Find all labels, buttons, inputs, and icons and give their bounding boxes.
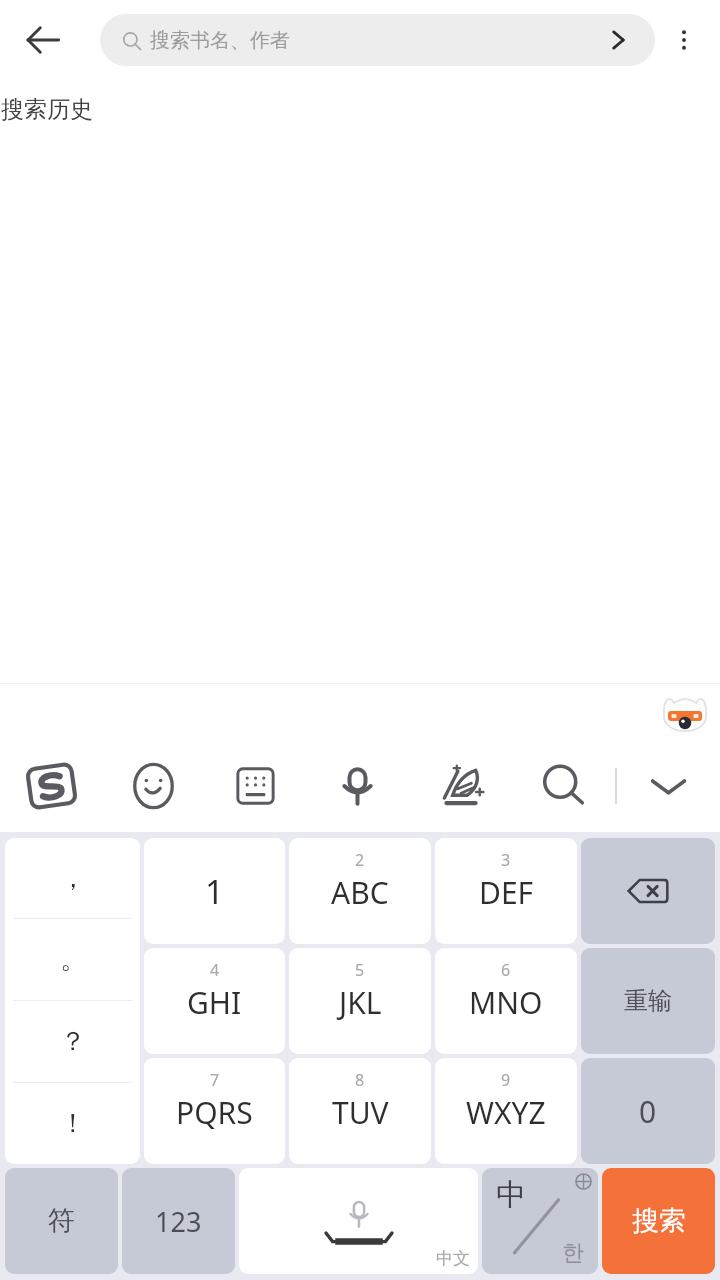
staticText: 中文 (436, 1248, 470, 1269)
staticText: ！ (60, 1107, 86, 1140)
staticText: JKL (339, 982, 382, 1023)
staticText: 中 (496, 1176, 526, 1214)
staticText: 7 (210, 1069, 220, 1091)
button[interactable]: 9 (435, 1058, 577, 1164)
staticText: 5 (355, 959, 365, 981)
button[interactable]: Sogou logo (0, 740, 102, 832)
button[interactable]: 2 (289, 838, 431, 944)
button[interactable]: Hide keyboard (617, 740, 720, 832)
staticText: 6 (501, 959, 511, 981)
button[interactable]: 3 (435, 838, 577, 944)
staticText: 3 (501, 849, 511, 871)
button[interactable]: 搜索 (602, 1168, 715, 1274)
staticText: 。 (60, 943, 86, 976)
staticText: TUV (332, 1092, 389, 1133)
button[interactable]: ！ (5, 1083, 140, 1164)
staticText: DEF (479, 872, 534, 913)
button[interactable]: Sogou assistant (656, 690, 714, 748)
button[interactable]: Search (595, 17, 641, 63)
staticText: 搜索书名、作者 (150, 28, 290, 53)
button[interactable]: 0 (581, 1058, 715, 1164)
staticText: 符 (48, 1204, 75, 1238)
button[interactable]: 5 (289, 948, 431, 1054)
staticText: ABC (331, 872, 389, 913)
staticText: 123 (155, 1203, 202, 1240)
button[interactable]: 6 (435, 948, 577, 1054)
button[interactable]: 4 (144, 948, 285, 1054)
button[interactable]: More options (656, 12, 712, 68)
button[interactable]: Voice input (306, 740, 409, 832)
staticText: 0 (639, 1091, 657, 1132)
button[interactable]: ？ (5, 1001, 140, 1082)
button[interactable]: 7 (144, 1058, 285, 1164)
button[interactable]: Switch language (482, 1168, 598, 1274)
staticText: 搜索 (632, 1204, 686, 1238)
button[interactable]: Back (12, 9, 74, 71)
staticText: GHI (187, 982, 242, 1023)
button[interactable]: 123 (122, 1168, 235, 1274)
staticText: 9 (501, 1069, 511, 1091)
button[interactable]: Backspace (581, 838, 715, 944)
staticText: 4 (210, 959, 220, 981)
button[interactable]: Search (512, 740, 615, 832)
button[interactable]: 8 (289, 1058, 431, 1164)
button[interactable]: Handwriting (409, 740, 512, 832)
button[interactable]: Emoji (102, 740, 204, 832)
button[interactable]: 重输 (581, 948, 715, 1054)
staticText: 2 (355, 849, 365, 871)
button[interactable]: Keyboard layout (204, 740, 306, 832)
button[interactable]: Space (239, 1168, 478, 1274)
staticText: PQRS (176, 1092, 253, 1133)
button[interactable]: 搜索书名、作者 (100, 14, 655, 66)
staticText: 1 (205, 869, 224, 914)
staticText: WXYZ (466, 1092, 546, 1133)
staticText: ， (60, 862, 86, 895)
button[interactable]: 符 (5, 1168, 118, 1274)
button[interactable]: 。 (5, 919, 140, 1000)
staticText: 重输 (624, 986, 672, 1016)
staticText: 8 (355, 1069, 365, 1091)
staticText: MNO (469, 982, 543, 1023)
staticText: ？ (60, 1025, 86, 1058)
button[interactable]: ， (5, 838, 140, 918)
staticText: 한 (562, 1239, 584, 1267)
button[interactable]: 1 (144, 838, 285, 944)
staticText: 搜索历史 (1, 95, 93, 124)
